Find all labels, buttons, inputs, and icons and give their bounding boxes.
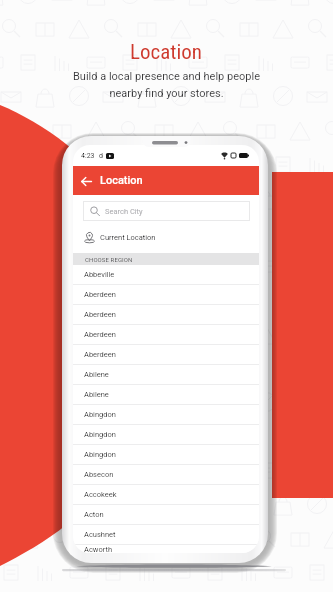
button[interactable]: Abbeville	[73, 265, 259, 284]
button[interactable]: Aberdeen	[73, 305, 259, 324]
staticText: Acton	[84, 510, 104, 519]
staticText: Abilene	[84, 390, 109, 399]
button[interactable]: Aberdeen	[73, 325, 259, 344]
button[interactable]: Aberdeen	[73, 285, 259, 304]
button[interactable]: Current Location	[73, 221, 259, 253]
staticText: Current Location	[100, 233, 156, 242]
staticText: Acushnet	[84, 530, 116, 539]
staticText: Location	[100, 174, 143, 187]
button[interactable]: Abingdon	[73, 405, 259, 424]
staticText: Aberdeen	[84, 310, 116, 319]
button[interactable]: Search City	[83, 201, 250, 221]
button[interactable]: Abingdon	[73, 445, 259, 464]
button[interactable]: Accokeek	[73, 485, 259, 504]
staticText: Acworth	[84, 545, 113, 553]
staticText: d	[99, 152, 103, 160]
button[interactable]: Abingdon	[73, 425, 259, 444]
staticText: Abingdon	[84, 430, 116, 439]
staticText: Abbeville	[84, 270, 115, 279]
staticText: Aberdeen	[84, 350, 116, 359]
button[interactable]: Aberdeen	[73, 345, 259, 364]
button[interactable]: Acworth	[73, 545, 259, 553]
button[interactable]: Absecon	[73, 465, 259, 484]
staticText: Abingdon	[84, 410, 116, 419]
staticText: Search City	[105, 207, 143, 216]
staticText: Abilene	[84, 370, 109, 379]
button[interactable]: Acushnet	[73, 525, 259, 544]
button[interactable]: Abilene	[73, 385, 259, 404]
staticText: 4:23	[81, 152, 95, 160]
staticText: Location	[130, 40, 203, 65]
staticText: Build a local presence and help people n…	[73, 70, 260, 99]
staticText: CHOOSE REGION	[85, 256, 133, 263]
button[interactable]: Abilene	[73, 365, 259, 384]
button[interactable]: Acton	[73, 505, 259, 524]
staticText: Abingdon	[84, 450, 116, 459]
staticText: Aberdeen	[84, 330, 116, 339]
button[interactable]: Back	[73, 166, 259, 195]
button[interactable]: Back	[78, 173, 94, 189]
staticText: Absecon	[84, 470, 114, 479]
staticText: Aberdeen	[84, 290, 116, 299]
staticText: Accokeek	[84, 490, 117, 499]
